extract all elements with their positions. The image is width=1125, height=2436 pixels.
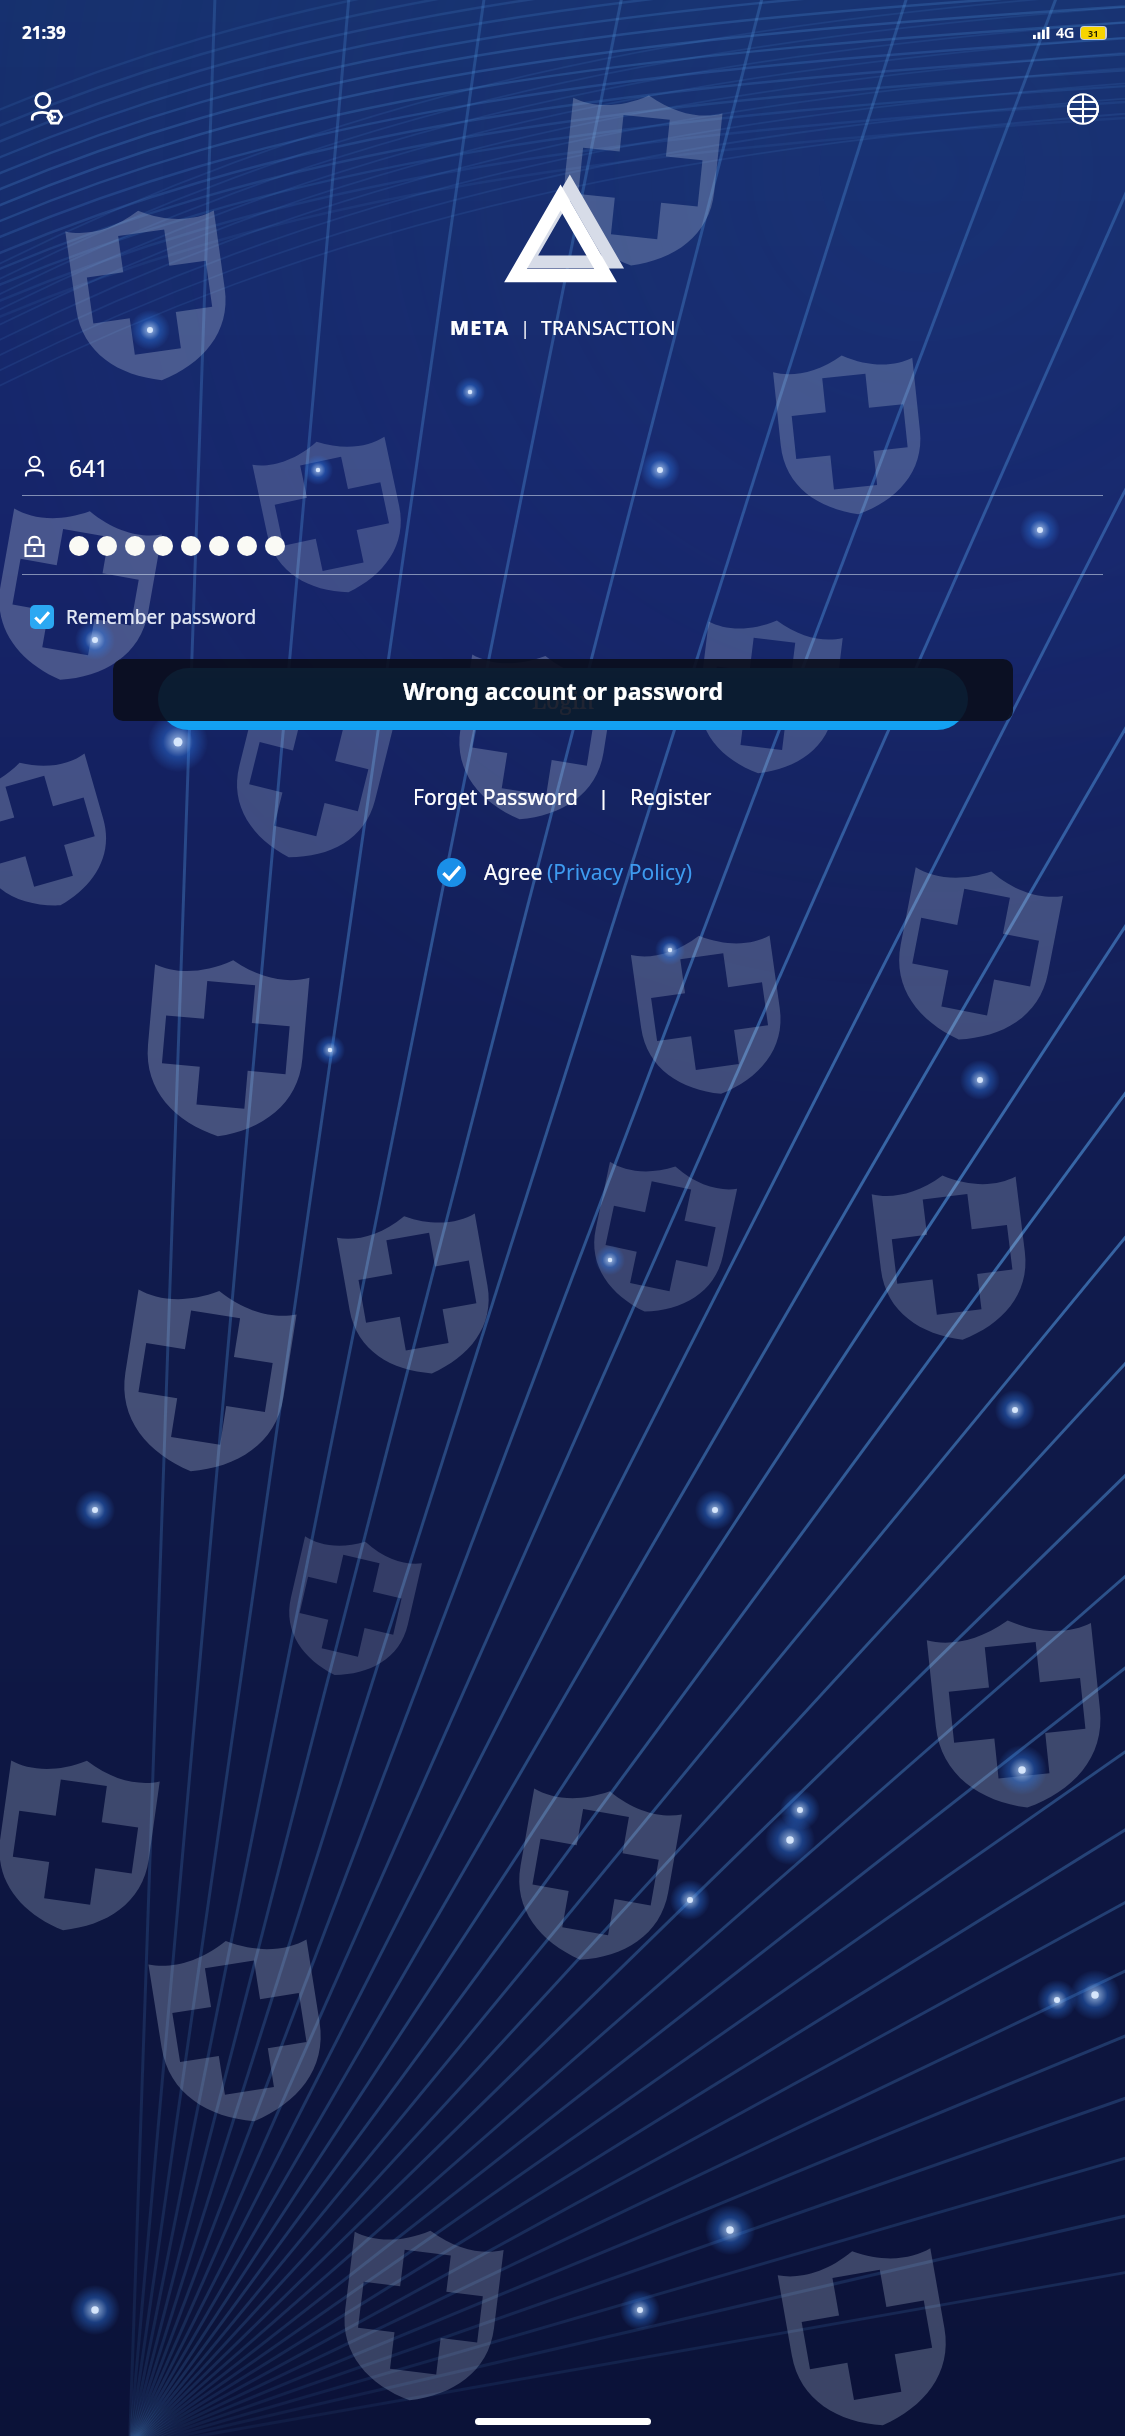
staticText: | [598,784,610,811]
staticText: Wrong account or password [403,675,723,706]
staticText: 641 [69,452,217,483]
button[interactable]: Forget Password [407,777,584,818]
button[interactable]: Register [624,777,718,818]
staticText: | [510,315,541,341]
staticText: 4G [1056,23,1075,42]
button[interactable]: 641 [22,439,1103,495]
button[interactable]: Language [1061,87,1105,131]
staticText: 21:39 [22,21,66,44]
button[interactable]: Agree [433,854,547,891]
button[interactable]: (Privacy Policy) [547,854,693,891]
staticText: META [450,314,510,341]
staticText: Remember password [66,604,257,630]
button[interactable]: Account settings [23,86,67,130]
staticText: Register [630,783,712,812]
button[interactable] [22,518,1103,574]
staticText: (Privacy Policy) [547,858,693,887]
button[interactable]: Login [158,668,968,730]
staticText: TRANSACTION [541,315,676,341]
staticText: Agree [484,858,543,887]
staticText: Forget Password [413,783,578,812]
staticText: 31 [1088,27,1099,39]
staticText: Login [532,684,595,715]
button[interactable]: Remember password [30,597,257,637]
